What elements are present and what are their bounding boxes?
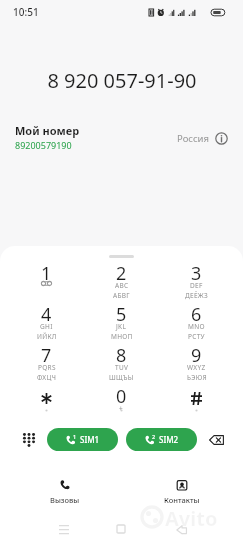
button[interactable]: Backspace <box>205 429 227 451</box>
staticText: 5 <box>116 302 127 327</box>
button[interactable]: Home <box>108 518 133 540</box>
staticText: + <box>119 404 124 413</box>
staticText: SIM1 <box>80 434 100 445</box>
button[interactable]: 9 <box>159 342 234 383</box>
button[interactable]: 2 <box>126 428 197 451</box>
button[interactable]: Россия <box>177 132 228 145</box>
button[interactable]: Recents <box>51 518 76 540</box>
staticText: 6 <box>191 302 202 327</box>
staticText: GHI <box>40 322 53 331</box>
button[interactable] <box>9 383 84 424</box>
button[interactable]: 1 <box>9 260 84 301</box>
staticText: ABC <box>115 281 129 290</box>
staticText: 9 <box>191 343 202 368</box>
staticText: 8 <box>116 343 127 368</box>
staticText: Мой номер <box>15 123 80 138</box>
staticText: ШЩЪЫ <box>109 373 134 382</box>
button[interactable]: 7 <box>9 342 84 383</box>
button[interactable]: 8 <box>84 342 159 383</box>
staticText: АБВГ <box>113 291 130 300</box>
button[interactable]: Контакты <box>141 479 222 509</box>
staticText: 0 <box>116 384 127 409</box>
staticText: Россия <box>177 132 209 145</box>
button[interactable]: 4 <box>9 301 84 342</box>
button[interactable]: 1 <box>47 428 118 451</box>
button[interactable]: Вызовы <box>25 479 105 509</box>
button[interactable]: 5 <box>84 301 159 342</box>
staticText: 1 <box>73 433 77 440</box>
staticText: 7 <box>41 343 52 368</box>
button[interactable]: 2 <box>84 260 159 301</box>
staticText: 2 <box>116 261 127 286</box>
staticText: SIM2 <box>159 434 179 445</box>
staticText: 89200579190 <box>15 139 72 151</box>
staticText: 1 <box>41 261 52 286</box>
button[interactable]: Back <box>169 518 194 540</box>
button[interactable]: Keypad <box>17 428 40 451</box>
staticText: PQRS <box>38 363 56 372</box>
staticText: Вызовы <box>50 495 80 505</box>
staticText: ИЙКЛ <box>37 332 57 341</box>
staticText: MNO <box>188 322 205 331</box>
staticText: TUV <box>115 363 129 372</box>
staticText: 2 <box>152 433 156 440</box>
staticText: WXYZ <box>187 363 206 372</box>
staticText: ФХЦЧ <box>37 373 57 382</box>
staticText: 10:51 <box>13 5 39 19</box>
button[interactable]: 3 <box>159 260 234 301</box>
staticText: DEF <box>190 281 203 290</box>
staticText: МНОП <box>111 332 133 341</box>
staticText: Контакты <box>164 495 200 505</box>
button[interactable]: 6 <box>159 301 234 342</box>
button[interactable] <box>159 383 234 424</box>
staticText: 8 920 057-91-90 <box>47 67 197 94</box>
staticText: ЬЭЮЯ <box>187 373 207 382</box>
staticText: JKL <box>116 322 127 331</box>
staticText: 3 <box>191 261 202 286</box>
button[interactable]: 0 <box>84 383 159 424</box>
staticText: РСТУ <box>188 332 205 341</box>
staticText: Avito <box>165 505 218 532</box>
staticText: ДЕЁЖЗ <box>185 291 209 300</box>
staticText: 4 <box>41 302 52 327</box>
